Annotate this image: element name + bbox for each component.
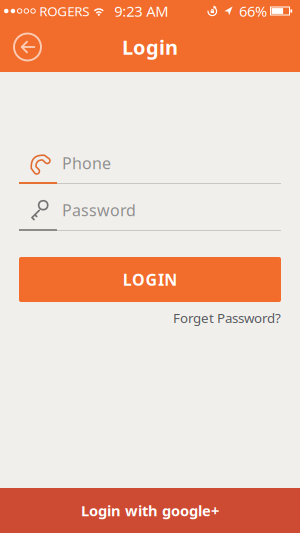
button[interactable]: Back: [14, 33, 41, 60]
staticText: Phone: [62, 152, 111, 174]
staticText: Login: [122, 34, 178, 60]
staticText: 9:23 AM: [114, 1, 168, 21]
button[interactable]: LOGIN: [19, 257, 281, 302]
button[interactable]: Login with google+: [0, 488, 300, 533]
button[interactable]: Password: [0, 200, 300, 231]
staticText: Login with google+: [81, 501, 219, 520]
staticText: ROGERS: [39, 2, 89, 20]
staticText: 66%: [239, 1, 267, 21]
button[interactable]: Phone: [0, 153, 300, 184]
staticText: Password: [62, 199, 136, 221]
button[interactable]: Forget Password?: [173, 309, 281, 327]
staticText: LOGIN: [123, 269, 177, 290]
staticText: Forget Password?: [173, 309, 281, 327]
